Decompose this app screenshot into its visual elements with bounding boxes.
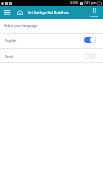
staticText: Sri Sathya Sai Bakthas [28, 10, 69, 15]
staticText: 4:14% [70, 1, 79, 5]
staticText: 7:41 pm [84, 1, 96, 5]
staticText: English [5, 38, 17, 42]
button[interactable]: Home [14, 6, 25, 19]
button[interactable]: English [0, 33, 103, 47]
button[interactable]: Menu [1, 6, 12, 19]
button[interactable]: Tamil [0, 49, 103, 62]
button[interactable]: Offline [88, 8, 100, 17]
staticText: Offline [90, 14, 98, 17]
staticText: Tamil [5, 54, 14, 58]
staticText: Select your language [4, 23, 38, 27]
